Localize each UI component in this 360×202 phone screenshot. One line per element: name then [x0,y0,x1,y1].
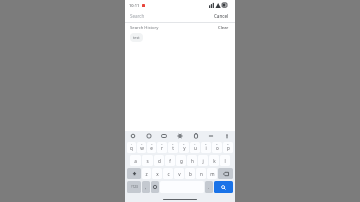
button[interactable]: More options [223,132,231,140]
button[interactable]: g [176,155,186,166]
staticText: m [210,171,215,177]
button[interactable]: r [157,142,167,153]
staticText: 3 [151,142,153,145]
staticText: u [194,145,197,151]
staticText: c [167,171,170,177]
button[interactable]: Search [214,181,233,193]
button[interactable]: b [185,168,195,179]
staticText: ?123 [131,185,138,189]
button[interactable]: Cancel [213,12,230,20]
staticText: y [183,145,186,151]
button[interactable]: u [190,142,200,153]
button[interactable]: Backspace [218,168,233,179]
staticText: q [130,145,133,151]
staticText: r [161,145,163,151]
button[interactable]: Google search [129,132,137,140]
button[interactable]: h [187,155,197,166]
staticText: . [208,184,210,190]
staticText: n [200,171,203,177]
button[interactable]: s [142,155,153,166]
staticText: o [216,145,219,151]
staticText: b [189,171,192,177]
staticText: 9 [216,142,218,145]
button[interactable]: e [147,142,156,153]
button[interactable]: t [168,142,178,153]
button[interactable]: y [179,142,189,153]
button[interactable]: Shift [127,168,141,179]
staticText: Search History [130,25,159,31]
button[interactable]: p [223,142,233,153]
staticText: 8 [205,142,207,145]
staticText: 5 [172,142,174,145]
staticText: f [169,158,171,164]
staticText: e [150,145,153,151]
button[interactable]: test [130,33,143,42]
staticText: , [145,184,147,190]
staticText: Cancel [214,13,229,19]
button[interactable]: x [152,168,162,179]
button[interactable]: v [174,168,184,179]
staticText: d [158,158,161,164]
button[interactable]: k [209,155,219,166]
button[interactable]: . [205,181,213,193]
staticText: x [156,171,159,177]
staticText: 0 [227,142,229,145]
button[interactable]: q [127,142,136,153]
button[interactable]: l [220,155,230,166]
button[interactable]: i [201,142,211,153]
button[interactable]: a [130,155,141,166]
staticText: 4 [161,142,163,145]
staticText: z [145,171,148,177]
button[interactable]: f [165,155,175,166]
button[interactable]: , [142,181,150,193]
button[interactable]: Stickers [145,132,153,140]
staticText: t [172,145,174,151]
staticText: 2 [141,142,143,145]
staticText: 7 [194,142,196,145]
staticText: p [227,145,230,151]
button[interactable]: Emoji [151,181,159,193]
staticText: v [178,171,181,177]
button[interactable]: c [163,168,173,179]
staticText: test [133,35,140,40]
staticText: l [224,158,226,164]
staticText: 1 [131,142,133,145]
button[interactable]: Symbols [127,181,141,193]
staticText: w [140,145,144,151]
button[interactable]: Clear [217,24,230,32]
staticText: j [202,158,204,164]
button[interactable]: o [212,142,222,153]
button[interactable]: GIF [160,132,168,140]
staticText: Search [130,13,145,19]
button[interactable]: Clipboard [192,132,200,140]
button[interactable]: Settings [176,132,184,140]
button[interactable]: Text editing [207,132,215,140]
staticText: 6 [183,142,185,145]
button[interactable]: n [196,168,206,179]
button[interactable]: z [142,168,151,179]
button[interactable]: d [154,155,164,166]
staticText: s [146,158,149,164]
staticText: h [191,158,194,164]
staticText: 10:11 [129,3,140,8]
button[interactable]: m [207,168,217,179]
button[interactable]: j [198,155,208,166]
staticText: i [205,145,207,151]
staticText: g [180,158,183,164]
staticText: a [134,158,137,164]
staticText: Clear [218,25,229,31]
button[interactable]: w [137,142,146,153]
staticText: k [213,158,216,164]
